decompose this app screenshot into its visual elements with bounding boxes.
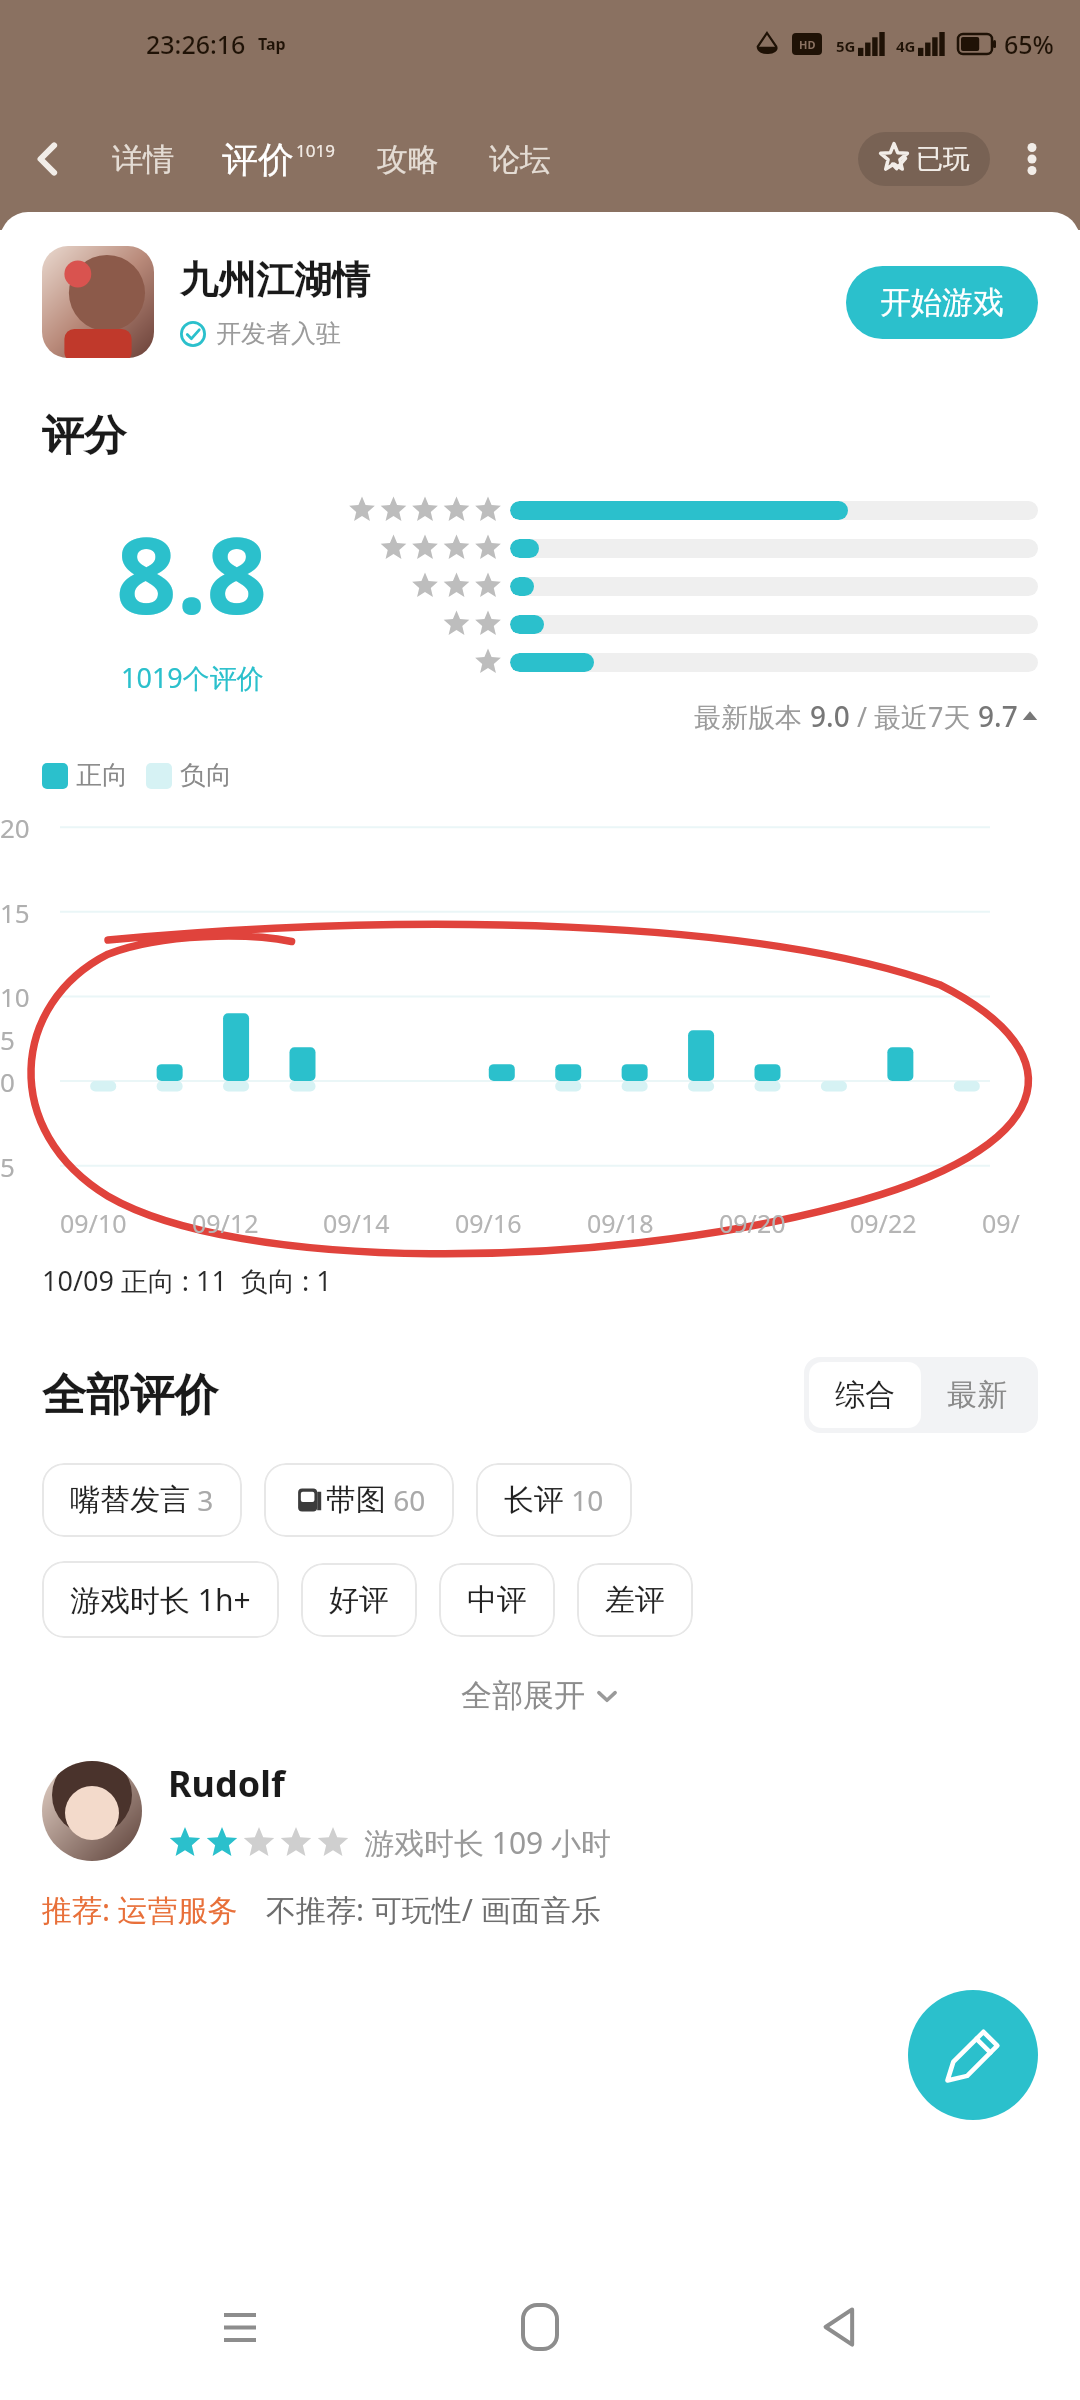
staticText: Rudolf	[168, 1759, 285, 1808]
staticText: 长评	[504, 1481, 564, 1519]
button[interactable]: 带图	[264, 1463, 454, 1537]
staticText: 09/18	[587, 1206, 654, 1240]
button[interactable]: 好评	[301, 1563, 417, 1637]
staticText: 全部展开	[461, 1676, 585, 1715]
button[interactable]: 详情	[96, 140, 190, 179]
staticText: 5	[0, 1149, 15, 1184]
button[interactable]: Back	[780, 2282, 900, 2372]
button[interactable]: 游戏时长 1h+	[42, 1561, 279, 1638]
staticText: 嘴替发言	[70, 1481, 190, 1519]
button[interactable]: 九州江湖情	[0, 246, 1080, 358]
staticText: 最新	[947, 1376, 1007, 1414]
button[interactable]: 攻略	[361, 140, 455, 179]
button[interactable]: 差评	[577, 1563, 693, 1637]
staticText: 09/	[982, 1206, 1020, 1240]
staticText: 3	[190, 1481, 214, 1519]
staticText: 全部评价	[42, 1368, 218, 1423]
button[interactable]: 已玩	[858, 132, 990, 186]
staticText: 15	[0, 895, 30, 930]
staticText: 60	[386, 1481, 426, 1519]
staticText: 论坛	[489, 140, 551, 179]
staticText: 开始游戏	[880, 283, 1004, 322]
staticText: HD	[799, 37, 816, 52]
staticText: 带图	[326, 1481, 386, 1519]
staticText: 10	[0, 979, 30, 1014]
staticText: 好评	[329, 1581, 389, 1619]
staticText: 评价	[222, 137, 294, 182]
staticText: 9.0	[810, 697, 850, 735]
staticText: 09/12	[192, 1206, 259, 1240]
staticText: 不推荐: 可玩性/ 画面音乐	[266, 1889, 601, 1930]
button[interactable]: Home	[480, 2282, 600, 2372]
staticText: 5G	[836, 36, 856, 56]
staticText: 已玩	[916, 142, 970, 176]
staticText: 推荐: 运营服务	[42, 1889, 238, 1930]
staticText: 1019	[296, 139, 335, 162]
staticText: 最新版本	[694, 698, 810, 735]
staticText: 23:26:16	[146, 27, 246, 61]
button[interactable]: Recents	[180, 2282, 300, 2372]
staticText: 0	[0, 1064, 15, 1099]
button[interactable]: 嘴替发言	[42, 1463, 242, 1537]
button[interactable]: Write review	[908, 1990, 1038, 2120]
staticText: 4G	[896, 36, 916, 56]
button[interactable]: 1019个评价	[121, 659, 264, 696]
staticText: 正向	[76, 759, 128, 792]
staticText: 游戏时长 1h+	[70, 1579, 251, 1620]
button[interactable]: 最新	[921, 1362, 1033, 1428]
staticText: 09/16	[455, 1206, 522, 1240]
staticText: 09/22	[850, 1206, 917, 1240]
staticText: 09/14	[323, 1206, 390, 1240]
staticText: 负向	[180, 759, 232, 792]
staticText: 评分	[42, 410, 126, 463]
staticText: 65%	[1004, 27, 1054, 61]
button[interactable]: Back	[0, 111, 96, 207]
button[interactable]: 开始游戏	[846, 266, 1038, 339]
staticText: 1019个评价	[121, 659, 264, 696]
staticText: 攻略	[377, 140, 439, 179]
button[interactable]: 论坛	[473, 140, 567, 179]
button[interactable]: 中评	[439, 1563, 555, 1637]
staticText: 游戏时长 109 小时	[364, 1822, 612, 1863]
staticText: 中评	[467, 1581, 527, 1619]
staticText: 8.8	[116, 501, 268, 645]
button[interactable]: 综合	[809, 1362, 921, 1428]
staticText: 差评	[605, 1581, 665, 1619]
button[interactable]: More options	[990, 111, 1074, 207]
button[interactable]: 全部展开	[443, 1668, 637, 1723]
staticText: 综合	[835, 1376, 895, 1414]
staticText: 9.7	[978, 697, 1018, 735]
staticText: 九州江湖情	[180, 256, 370, 304]
staticText: 09/10	[60, 1206, 127, 1240]
staticText: 开发者入驻	[216, 318, 341, 349]
staticText: 10	[564, 1481, 604, 1519]
staticText: Tap	[258, 33, 286, 55]
staticText: 10/09 正向 : 11 负向 : 1	[42, 1262, 332, 1299]
staticText: 5	[0, 1022, 15, 1057]
staticText: / 最近7天	[850, 698, 978, 735]
button[interactable]: 评价	[214, 137, 343, 182]
button[interactable]: 长评	[476, 1463, 632, 1537]
staticText: 20	[0, 810, 30, 845]
staticText: 详情	[112, 140, 174, 179]
button[interactable]: Rudolf	[0, 1759, 1080, 1863]
staticText: 09/20	[719, 1206, 786, 1240]
